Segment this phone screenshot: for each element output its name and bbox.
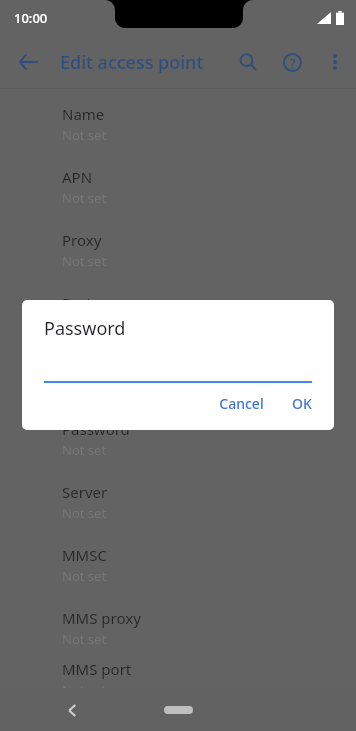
button[interactable]: Password xyxy=(0,407,356,470)
button[interactable]: Home xyxy=(164,706,193,714)
button[interactable]: MMS proxy xyxy=(0,596,356,659)
staticText: ? xyxy=(290,55,296,71)
staticText: Not set xyxy=(62,315,107,333)
button[interactable]: Proxy xyxy=(0,218,356,281)
staticText: Proxy xyxy=(62,230,102,250)
staticText: MMS proxy xyxy=(62,608,141,628)
staticText: Edit access point xyxy=(60,50,204,75)
button[interactable]: Username xyxy=(0,344,356,407)
button[interactable]: Search xyxy=(226,40,270,84)
staticText: MMS port xyxy=(62,659,132,679)
button[interactable]: APN xyxy=(0,155,356,218)
staticText: Port xyxy=(62,293,92,313)
staticText: Password xyxy=(62,419,130,439)
staticText: Not set xyxy=(62,378,107,396)
staticText: MMSC xyxy=(62,545,107,565)
staticText: APN xyxy=(62,167,93,187)
button[interactable]: Back xyxy=(56,694,88,726)
button[interactable]: Cancel xyxy=(207,385,276,422)
staticText: Password xyxy=(44,316,126,341)
staticText: Not set xyxy=(62,441,107,459)
staticText: OK xyxy=(292,394,312,413)
staticText: Not set xyxy=(62,630,107,648)
button[interactable] xyxy=(44,361,312,383)
staticText: Not set xyxy=(62,504,107,522)
button[interactable]: Port xyxy=(0,281,356,344)
button[interactable]: More options xyxy=(314,41,356,83)
button[interactable]: MMSC xyxy=(0,533,356,596)
staticText: Not set xyxy=(62,126,107,144)
staticText: Not set xyxy=(62,567,107,585)
staticText: Server xyxy=(62,482,108,502)
staticText: Not set xyxy=(62,189,107,207)
button[interactable]: MMS port xyxy=(0,659,356,688)
staticText: Cancel xyxy=(219,394,264,413)
button[interactable]: OK xyxy=(280,385,324,422)
staticText: 10:00 xyxy=(14,9,48,27)
button[interactable]: Help xyxy=(270,40,314,84)
button[interactable]: Back xyxy=(8,42,48,82)
staticText: Not set xyxy=(62,252,107,270)
button[interactable]: Name xyxy=(0,92,356,155)
button[interactable]: Server xyxy=(0,470,356,533)
staticText: Name xyxy=(62,104,105,124)
